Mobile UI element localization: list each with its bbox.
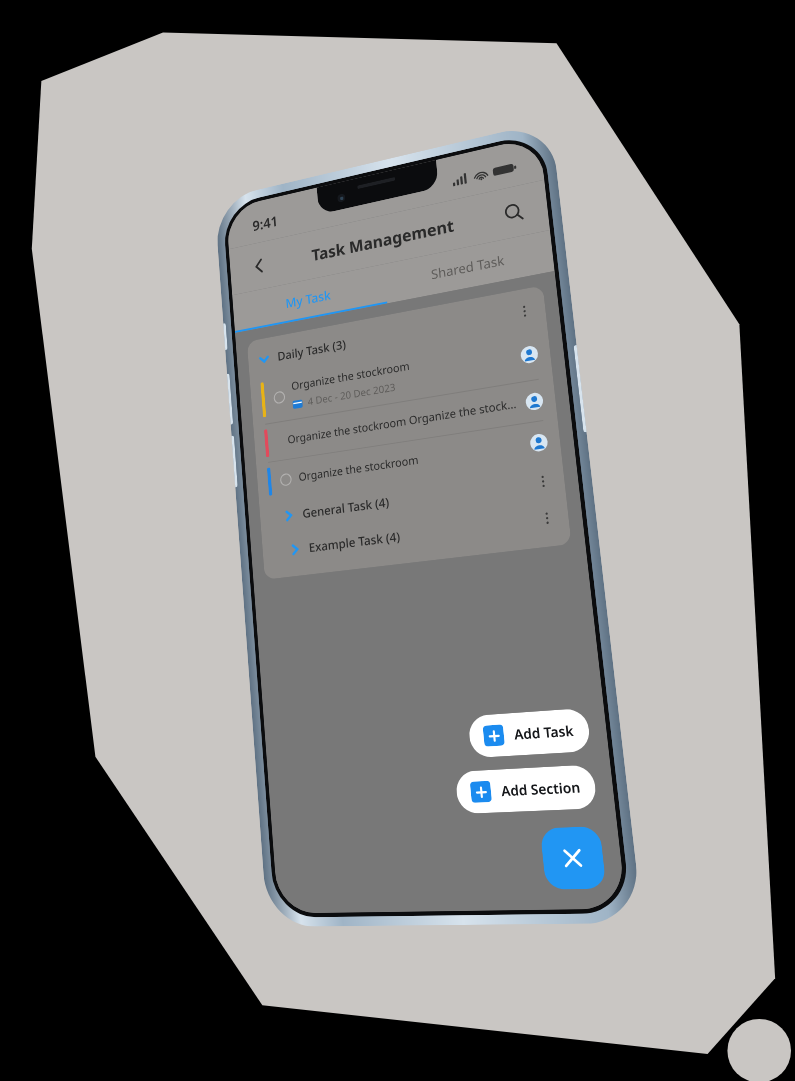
button[interactable]: Add Section	[455, 764, 598, 814]
staticText: Example Task (4)	[308, 528, 401, 556]
staticText: Organize the stockroom Organize the stoc…	[287, 395, 520, 447]
button[interactable]: Organize the stockroom	[256, 419, 562, 502]
button[interactable]: General Task (4)	[259, 459, 566, 536]
button[interactable]: Add Task	[467, 708, 591, 758]
staticText: 4 Dec - 20 Dec 2023	[307, 380, 397, 408]
button[interactable]: Organize the stockroom	[249, 325, 553, 426]
button[interactable]: Back	[239, 242, 279, 290]
button[interactable]: More options	[534, 505, 559, 530]
button[interactable]: Daily Task (3)	[247, 289, 547, 378]
button[interactable]: Shared Task	[384, 230, 555, 303]
button[interactable]: More options	[530, 468, 555, 494]
staticText: General Task (4)	[302, 494, 390, 522]
staticText: Task Management	[311, 214, 455, 266]
staticText: 9:41	[252, 211, 279, 235]
staticText: Add Section	[500, 777, 581, 800]
button[interactable]: Close menu	[540, 826, 607, 890]
button[interactable]: More options	[512, 298, 536, 324]
staticText: My Task	[285, 286, 332, 312]
button[interactable]: Example Task (4)	[261, 496, 570, 570]
button[interactable]: Organize the stockroom Organize the stoc…	[253, 377, 557, 464]
staticText: Shared Task	[430, 251, 505, 283]
button[interactable]: Search	[489, 186, 537, 238]
staticText: Add Task	[513, 721, 575, 744]
staticText: Daily Task (3)	[277, 336, 347, 364]
staticText: Organize the stockroom	[298, 452, 420, 485]
staticText: Organize the stockroom	[291, 358, 411, 394]
button[interactable]: My Task	[232, 264, 387, 333]
